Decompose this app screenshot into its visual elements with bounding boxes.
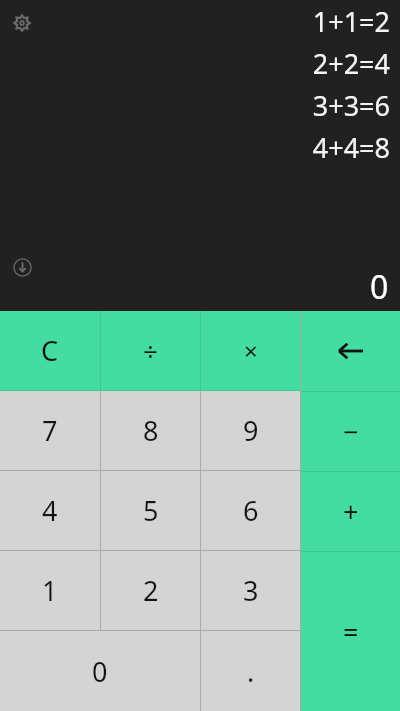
button[interactable]: 3 [201, 551, 300, 630]
staticText: . [247, 653, 255, 690]
staticText: 3+3=6 [312, 87, 390, 124]
staticText: 6 [243, 492, 259, 529]
staticText: 1 [42, 572, 58, 609]
button[interactable]: 5 [101, 471, 200, 550]
button[interactable]: Save history [9, 254, 35, 280]
staticText: 4+4=8 [312, 129, 390, 166]
staticText: 3 [243, 572, 259, 609]
staticText: 0 [92, 653, 108, 690]
button[interactable]: − [301, 392, 400, 471]
staticText: 0 [370, 265, 389, 309]
staticText: 2 [143, 572, 159, 609]
button[interactable]: 9 [201, 391, 300, 470]
staticText: − [343, 413, 359, 450]
button[interactable]: 1+1=2 [312, 0, 390, 42]
staticText: 9 [243, 412, 259, 449]
button[interactable]: 4+4=8 [312, 126, 390, 168]
staticText: 4 [42, 492, 58, 529]
staticText: 5 [143, 492, 159, 529]
button[interactable]: . [201, 631, 300, 711]
staticText: 1+1=2 [312, 3, 390, 40]
staticText: × [244, 334, 258, 367]
staticText: ÷ [143, 333, 158, 368]
button[interactable]: = [301, 552, 400, 711]
button[interactable]: 6 [201, 471, 300, 550]
button[interactable]: 3+3=6 [312, 84, 390, 126]
staticText: 7 [42, 412, 58, 449]
button[interactable]: 8 [101, 391, 200, 470]
button[interactable]: 7 [0, 391, 100, 470]
button[interactable]: Settings [9, 10, 35, 36]
button[interactable]: C [0, 311, 100, 390]
staticText: + [343, 493, 359, 530]
staticText: 2+2=4 [312, 45, 390, 82]
button[interactable]: + [301, 472, 400, 551]
button[interactable]: 0 [0, 631, 200, 711]
button[interactable]: ÷ [101, 311, 200, 390]
staticText: = [343, 613, 359, 650]
button[interactable]: 1 [0, 551, 100, 630]
button[interactable]: 4 [0, 471, 100, 550]
staticText: 8 [143, 412, 159, 449]
button[interactable]: × [201, 311, 300, 390]
button[interactable]: 2+2=4 [312, 42, 390, 84]
staticText: C [41, 332, 59, 369]
button[interactable]: 2 [101, 551, 200, 630]
button[interactable]: Backspace [301, 311, 400, 391]
